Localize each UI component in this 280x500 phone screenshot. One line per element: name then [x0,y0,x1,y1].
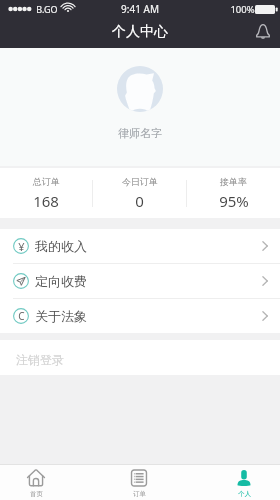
button[interactable]: Notifications [252,20,274,42]
staticText: 0 [135,191,144,211]
button[interactable]: C [0,299,280,333]
staticText: 我的收入 [35,238,87,254]
button[interactable]: 个人 [216,465,272,500]
button[interactable]: 定向收费 [0,264,280,298]
staticText: 定向收费 [35,273,87,289]
staticText: 首页 [30,490,43,498]
button[interactable]: 注销登录 [0,340,280,375]
button[interactable]: 首页 [8,465,64,500]
staticText: 关于法象 [35,308,87,324]
staticText: ¥ [18,239,25,254]
staticText: 注销登录 [16,352,64,367]
staticText: 订单 [133,490,146,498]
staticText: 今日订单 [122,176,158,187]
staticText: C [18,309,25,323]
staticText: B.GO [36,3,58,15]
button[interactable]: 订单 [111,465,167,500]
staticText: 168 [33,191,59,211]
staticText: 总订单 [33,176,60,187]
button[interactable]: 总订单 [0,168,92,218]
staticText: 律师名字 [118,126,162,140]
button[interactable]: ¥ [0,229,280,263]
staticText: 个人中心 [112,23,168,41]
staticText: 100% [230,3,255,16]
staticText: 95% [219,191,249,211]
button[interactable]: 今日订单 [93,168,186,218]
staticText: 接单率 [220,176,247,187]
staticText: 个人 [238,490,251,498]
button[interactable]: 接单率 [187,168,280,218]
staticText: 9:41 AM [121,2,159,16]
